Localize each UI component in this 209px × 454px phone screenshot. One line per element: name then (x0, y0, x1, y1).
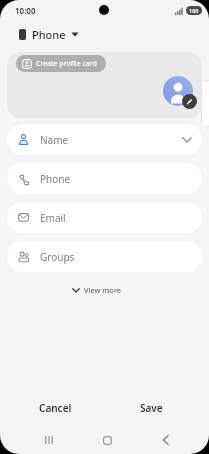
staticText: Create profile card (36, 59, 97, 69)
button[interactable] (182, 94, 197, 109)
button[interactable] (39, 430, 59, 450)
staticText: Phone (40, 172, 71, 186)
button[interactable]: Phone (7, 163, 202, 194)
staticText: 100 (189, 7, 199, 14)
staticText: Groups (40, 250, 75, 264)
staticText: 10:00 (15, 5, 36, 16)
button[interactable]: Email (7, 202, 202, 233)
button[interactable]: Name (7, 124, 202, 155)
button[interactable]: Phone (19, 21, 209, 48)
button[interactable] (155, 430, 175, 450)
staticText: Name (40, 133, 69, 147)
button[interactable]: Save (134, 396, 169, 420)
button[interactable]: View more (0, 284, 201, 296)
staticText: View more (84, 285, 122, 295)
staticText: Cancel (39, 401, 72, 415)
button[interactable] (97, 430, 117, 450)
button[interactable]: Cancel (33, 396, 78, 420)
button[interactable]: Groups (7, 241, 202, 272)
staticText: Phone (32, 27, 66, 42)
staticText: Email (40, 211, 66, 225)
staticText: Save (140, 401, 163, 415)
button[interactable] (163, 76, 193, 106)
button[interactable]: Create profile card (16, 55, 106, 72)
